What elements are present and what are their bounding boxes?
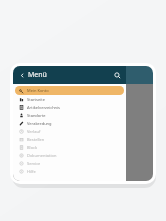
staticText: Standorte — [27, 113, 46, 118]
staticText: Mein Konto — [27, 88, 49, 93]
button[interactable]: Verlauf — [13, 127, 126, 135]
button[interactable]: Search — [112, 70, 123, 81]
button[interactable]: Verabredung — [13, 119, 126, 127]
staticText: Bestellen — [27, 137, 45, 142]
button[interactable]: Dokumentation — [13, 151, 126, 159]
button[interactable]: Mein Konto — [15, 86, 124, 95]
staticText: Startseite — [27, 97, 45, 102]
button[interactable]: Block — [13, 143, 126, 151]
button[interactable]: Hilfe — [13, 167, 126, 175]
button[interactable]: Bestellen — [13, 135, 126, 143]
staticText: Service — [27, 161, 41, 166]
staticText: Verlauf — [27, 129, 41, 134]
staticText: Block — [27, 145, 38, 150]
button[interactable]: Artikelverzeichnis — [13, 103, 126, 111]
staticText: Verabredung — [27, 121, 52, 126]
staticText: Artikelverzeichnis — [27, 105, 61, 110]
button[interactable]: Back — [17, 70, 27, 80]
button[interactable]: Startseite — [13, 95, 126, 103]
staticText: Menü — [28, 70, 47, 80]
staticText: Hilfe — [27, 169, 36, 174]
button[interactable]: Service — [13, 159, 126, 167]
staticText: Dokumentation — [27, 153, 57, 158]
button[interactable]: Standorte — [13, 111, 126, 119]
